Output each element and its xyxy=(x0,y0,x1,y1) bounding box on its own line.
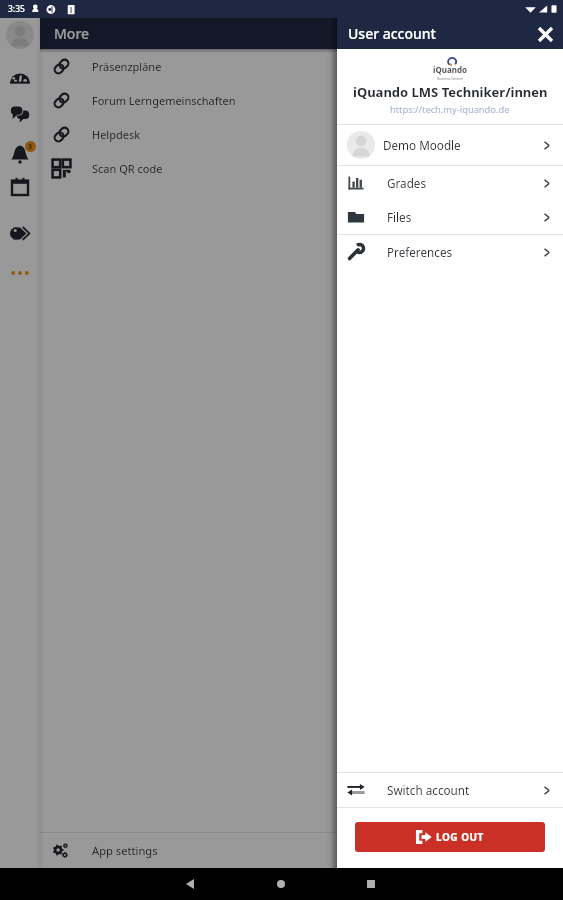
staticText: Scan QR code xyxy=(92,161,163,176)
button[interactable]: Forum Lerngemeinschaften xyxy=(40,83,563,117)
staticText: https://tech.my-iquando.de xyxy=(390,103,510,116)
button[interactable]: LOG OUT xyxy=(355,822,545,852)
button[interactable]: Helpdesk xyxy=(40,117,563,151)
staticText: LOG OUT xyxy=(436,830,484,844)
button[interactable]: Scan QR code xyxy=(40,151,563,185)
button[interactable]: Site home xyxy=(10,66,30,86)
staticText: Business Tandem xyxy=(437,77,464,80)
staticText: More xyxy=(54,24,90,43)
staticText: Helpdesk xyxy=(92,127,141,142)
button[interactable]: Präsenzpläne xyxy=(40,49,563,83)
staticText: 3:35 xyxy=(8,3,25,15)
staticText: Forum Lerngemeinschaften xyxy=(92,93,236,108)
button[interactable]: App settings xyxy=(40,833,563,868)
button[interactable]: Notifications xyxy=(10,144,30,164)
staticText: iQuando LMS Techniker/innen xyxy=(353,83,548,101)
staticText: User account xyxy=(348,24,436,43)
staticText: Demo Moodle xyxy=(383,137,461,153)
staticText: Preferences xyxy=(387,244,453,260)
button[interactable]: Switch account xyxy=(337,773,563,807)
staticText: Präsenzpläne xyxy=(92,59,162,74)
button[interactable]: Calendar xyxy=(10,177,30,197)
staticText: iQuando xyxy=(433,64,467,75)
button[interactable]: Messages xyxy=(10,104,30,124)
button[interactable]: Demo Moodle xyxy=(337,125,563,165)
staticText: Grades xyxy=(387,175,427,191)
staticText: 3 xyxy=(28,142,33,152)
button[interactable]: Close xyxy=(530,19,560,49)
button[interactable]: Files xyxy=(337,200,563,234)
button[interactable]: Grades xyxy=(337,166,563,200)
staticText: App settings xyxy=(92,843,158,858)
button[interactable]: Tags xyxy=(10,223,30,243)
staticText: 3:35 xyxy=(8,3,25,15)
button[interactable]: Preferences xyxy=(337,235,563,269)
staticText: Files xyxy=(387,209,412,225)
button[interactable]: More xyxy=(10,266,30,280)
staticText: Switch account xyxy=(387,782,470,798)
button[interactable]: User account xyxy=(6,21,34,49)
